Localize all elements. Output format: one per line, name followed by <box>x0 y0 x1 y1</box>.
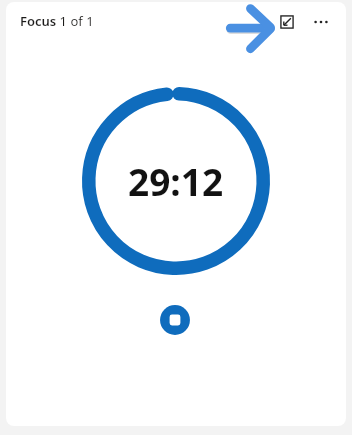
button[interactable]: Pop in <box>274 9 300 35</box>
button[interactable]: More options <box>308 9 334 35</box>
button[interactable]: Focus 1 of 1 <box>20 12 94 30</box>
button[interactable]: Focus timer progress <box>82 87 270 275</box>
staticText: 29:12 <box>128 156 224 206</box>
staticText: Focus 1 of 1 <box>20 12 94 30</box>
button[interactable]: Stop focus session <box>157 302 193 338</box>
